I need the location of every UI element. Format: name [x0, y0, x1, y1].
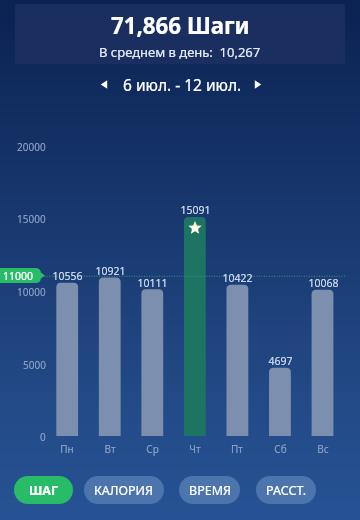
staticText: Вс	[317, 442, 329, 456]
staticText: 10921	[95, 264, 126, 278]
staticText: ВРЕМЯ	[189, 482, 231, 499]
staticText: 10068	[308, 276, 339, 290]
button[interactable]: 71,866 Шаги	[15, 4, 345, 64]
button[interactable]: 11000	[0, 268, 45, 283]
staticText: 10422	[222, 271, 253, 285]
button[interactable]: Previous week	[93, 73, 115, 95]
staticText: 71,866 Шаги	[111, 10, 250, 40]
staticText: КАЛОРИЯ	[94, 482, 154, 499]
staticText: Ср	[146, 442, 159, 456]
staticText: Чт	[189, 442, 201, 456]
staticText: 15000	[17, 212, 46, 226]
staticText: 20000	[17, 140, 46, 154]
staticText: 10556	[52, 269, 83, 283]
staticText: Вт	[104, 442, 116, 456]
staticText: 10111	[137, 276, 168, 290]
staticText: РАССТ.	[266, 482, 307, 499]
staticText: Сб	[274, 442, 287, 456]
button[interactable]: РАССТ.	[256, 476, 316, 504]
staticText: Пт	[231, 442, 243, 456]
staticText: ШАГ	[29, 482, 59, 499]
button[interactable]: Next week	[246, 73, 268, 95]
button[interactable]: ВРЕМЯ	[179, 476, 240, 504]
button[interactable]: КАЛОРИЯ	[84, 476, 164, 504]
staticText: 11000	[3, 269, 34, 283]
staticText: 10000	[17, 285, 46, 299]
button[interactable]: ШАГ	[14, 476, 73, 504]
staticText: 15091	[180, 203, 211, 217]
staticText: 6 июл. - 12 июл.	[123, 74, 242, 95]
staticText: 0	[40, 430, 46, 444]
staticText: 5000	[23, 358, 46, 372]
staticText: Пн	[60, 442, 74, 456]
staticText: В среднем в день: 10,267	[99, 43, 261, 61]
staticText: 4697	[268, 354, 293, 368]
